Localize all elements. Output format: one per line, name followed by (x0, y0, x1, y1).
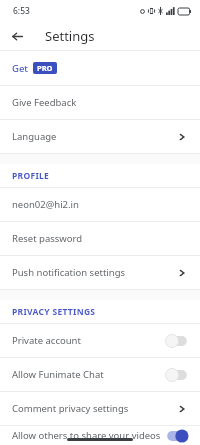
button[interactable]: Reset password (0, 222, 200, 255)
button[interactable]: Toggle off (165, 334, 189, 348)
staticText: Settings (45, 27, 95, 45)
staticText: Push notification settings (12, 266, 175, 279)
staticText: Allow Funimate Chat (12, 368, 165, 381)
staticText: Reset password (12, 232, 189, 245)
staticText: 6:53 (13, 5, 30, 17)
staticText: neon02@hi2.in (12, 198, 189, 211)
button[interactable]: Push notification settings (0, 256, 200, 289)
staticText: PRO (37, 63, 53, 73)
button[interactable]: Toggle on (165, 429, 189, 443)
button[interactable]: Allow others to share your videos (0, 426, 200, 445)
staticText: Comment privacy settings (12, 402, 175, 415)
staticText: Private account (12, 334, 165, 347)
button[interactable]: Toggle off (165, 368, 189, 382)
staticText: Allow others to share your videos (12, 429, 165, 442)
button[interactable]: neon02@hi2.in (0, 188, 200, 221)
button[interactable]: Private account (0, 324, 200, 357)
staticText: Language (12, 130, 175, 143)
staticText: Give Feedback (12, 96, 189, 109)
button[interactable]: Language (0, 120, 200, 153)
button[interactable]: Give Feedback (0, 86, 200, 119)
staticText: PROFILE (12, 170, 50, 182)
button[interactable]: Allow Funimate Chat (0, 358, 200, 391)
button[interactable]: Back (7, 26, 27, 46)
button[interactable]: Get (0, 51, 200, 85)
button[interactable]: Comment privacy settings (0, 392, 200, 425)
staticText: PRIVACY SETTINGS (12, 306, 96, 318)
staticText: Get (12, 62, 28, 75)
